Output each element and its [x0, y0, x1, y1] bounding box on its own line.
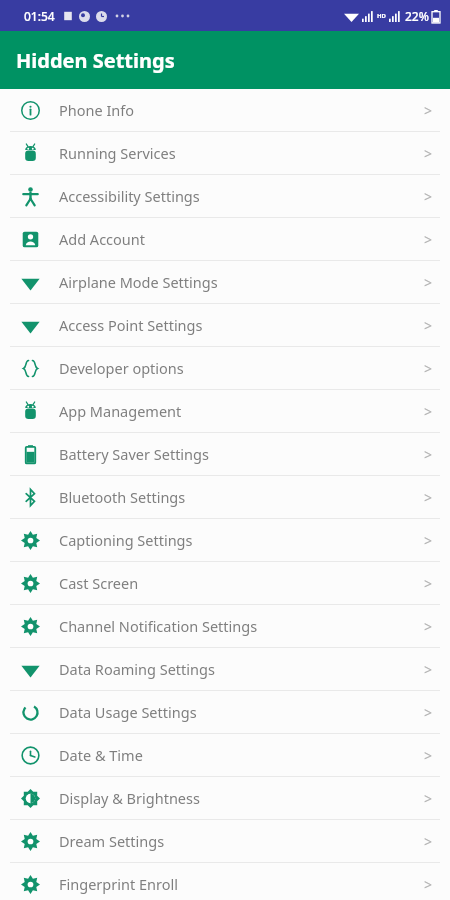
button[interactable]: Date & Time	[0, 734, 450, 777]
staticText: Phone Info	[59, 100, 424, 120]
staticText: Cast Screen	[59, 573, 424, 593]
button[interactable]: Running Services	[0, 132, 450, 175]
staticText: Accessibility Settings	[59, 186, 424, 206]
staticText: Developer options	[59, 358, 424, 378]
staticText: >	[424, 359, 433, 378]
staticText: >	[424, 144, 433, 163]
button[interactable]: Display & Brightness	[0, 777, 450, 820]
staticText: Channel Notification Settings	[59, 616, 424, 636]
staticText: 22%	[405, 8, 429, 24]
staticText: Add Account	[59, 229, 424, 249]
staticText: >	[424, 402, 433, 421]
button[interactable]: Data Usage Settings	[0, 691, 450, 734]
staticText: >	[424, 789, 433, 808]
staticText: Data Usage Settings	[59, 702, 424, 722]
staticText: >	[424, 875, 433, 894]
button[interactable]: Access Point Settings	[0, 304, 450, 347]
staticText: HD	[377, 12, 386, 20]
staticText: >	[424, 445, 433, 464]
button[interactable]: Airplane Mode Settings	[0, 261, 450, 304]
staticText: >	[424, 574, 433, 593]
button[interactable]: Captioning Settings	[0, 519, 450, 562]
staticText: >	[424, 660, 433, 679]
staticText: Date & Time	[59, 745, 424, 765]
button[interactable]: Dream Settings	[0, 820, 450, 863]
staticText: >	[424, 488, 433, 507]
button[interactable]: Channel Notification Settings	[0, 605, 450, 648]
staticText: Display & Brightness	[59, 788, 424, 808]
staticText: >	[424, 832, 433, 851]
staticText: Bluetooth Settings	[59, 487, 424, 507]
staticText: App Management	[59, 401, 424, 421]
staticText: >	[424, 230, 433, 249]
button[interactable]: Cast Screen	[0, 562, 450, 605]
staticText: >	[424, 273, 433, 292]
staticText: Captioning Settings	[59, 530, 424, 550]
staticText: >	[424, 187, 433, 206]
staticText: 01:54	[24, 8, 55, 24]
staticText: Dream Settings	[59, 831, 424, 851]
button[interactable]: Bluetooth Settings	[0, 476, 450, 519]
button[interactable]: Fingerprint Enroll	[0, 863, 450, 900]
staticText: >	[424, 101, 433, 120]
staticText: Airplane Mode Settings	[59, 272, 424, 292]
staticText: >	[424, 617, 433, 636]
button[interactable]: App Management	[0, 390, 450, 433]
staticText: Fingerprint Enroll	[59, 874, 424, 894]
button[interactable]: Add Account	[0, 218, 450, 261]
staticText: >	[424, 531, 433, 550]
staticText: Access Point Settings	[59, 315, 424, 335]
staticText: Running Services	[59, 143, 424, 163]
staticText: >	[424, 316, 433, 335]
staticText: >	[424, 703, 433, 722]
button[interactable]: Developer options	[0, 347, 450, 390]
staticText: Battery Saver Settings	[59, 444, 424, 464]
button[interactable]: Data Roaming Settings	[0, 648, 450, 691]
staticText: >	[424, 746, 433, 765]
button[interactable]: Battery Saver Settings	[0, 433, 450, 476]
button[interactable]: Phone Info	[0, 89, 450, 132]
button[interactable]: Accessibility Settings	[0, 175, 450, 218]
staticText: Hidden Settings	[16, 47, 175, 74]
staticText: Data Roaming Settings	[59, 659, 424, 679]
